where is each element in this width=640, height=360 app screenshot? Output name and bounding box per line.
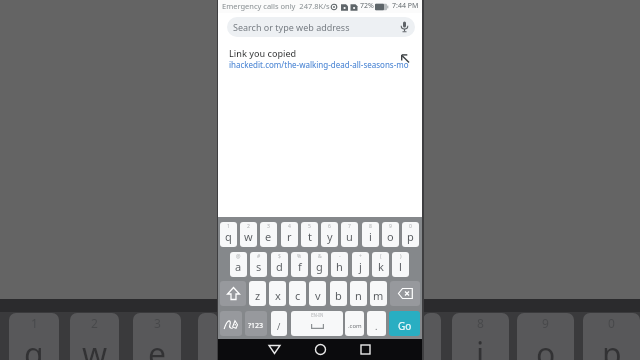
staticText: 6: [328, 223, 331, 230]
staticText: Go: [398, 319, 412, 333]
staticText: i: [476, 332, 485, 360]
staticText: f: [298, 259, 302, 274]
staticText: d: [276, 259, 283, 274]
staticText: /: [277, 320, 281, 332]
staticText: u: [346, 229, 353, 244]
staticText: 8: [369, 223, 372, 230]
staticText: ): [400, 253, 402, 260]
staticText: t: [308, 229, 312, 244]
button[interactable]: z: [249, 281, 266, 306]
staticText: 2: [91, 315, 98, 331]
button[interactable]: #: [250, 252, 267, 277]
staticText: .com: [348, 322, 362, 330]
staticText: l: [399, 259, 402, 274]
staticText: w: [82, 332, 108, 360]
staticText: o: [387, 229, 394, 244]
staticText: EN-IN: [311, 312, 324, 318]
button[interactable]: 1: [220, 222, 237, 247]
staticText: $: [278, 253, 281, 260]
button[interactable]: x: [269, 281, 286, 306]
button[interactable]: EN-IN: [291, 311, 343, 336]
staticText: e: [148, 332, 167, 360]
staticText: ?123: [248, 321, 264, 331]
button[interactable]: 9: [382, 222, 399, 247]
button[interactable]: m: [370, 281, 387, 306]
button[interactable]: [359, 343, 372, 356]
button[interactable]: $: [271, 252, 288, 277]
staticText: 9: [389, 223, 392, 230]
button[interactable]: 6: [321, 222, 338, 247]
button[interactable]: c: [289, 281, 306, 306]
staticText: n: [355, 288, 362, 303]
staticText: ihackedit.com/the-walking-dead-all-seaso…: [229, 59, 409, 70]
staticText: 7:44 PM: [392, 1, 419, 11]
button[interactable]: v: [309, 281, 326, 306]
staticText: c: [295, 288, 301, 303]
staticText: m: [373, 288, 384, 303]
staticText: 0: [608, 315, 615, 331]
staticText: 1: [31, 315, 38, 331]
button[interactable]: [314, 343, 327, 356]
button[interactable]: ?123: [245, 311, 267, 336]
button[interactable]: +: [352, 252, 369, 277]
button[interactable]: &: [311, 252, 328, 277]
staticText: #: [257, 253, 261, 260]
staticText: Search or type web address: [233, 21, 350, 33]
staticText: 7: [348, 223, 351, 230]
button[interactable]: b: [330, 281, 347, 306]
staticText: g: [316, 259, 323, 274]
button[interactable]: @: [230, 252, 247, 277]
button[interactable]: (: [372, 252, 389, 277]
staticText: p: [602, 332, 622, 360]
staticText: a: [235, 259, 242, 274]
button[interactable]: ): [392, 252, 409, 277]
staticText: 3: [267, 223, 270, 230]
staticText: e: [265, 229, 272, 244]
staticText: b: [335, 288, 342, 303]
button[interactable]: n: [350, 281, 367, 306]
staticText: 4: [288, 223, 291, 230]
staticText: o: [536, 332, 556, 360]
staticText: q: [225, 229, 232, 244]
button[interactable]: 4: [281, 222, 298, 247]
button[interactable]: 7: [341, 222, 358, 247]
staticText: 0: [409, 223, 412, 230]
button[interactable]: Go: [389, 311, 420, 336]
button[interactable]: [268, 343, 281, 356]
staticText: 8: [477, 315, 484, 331]
button[interactable]: 3: [260, 222, 277, 247]
button[interactable]: 8: [362, 222, 379, 247]
button[interactable]: 0: [402, 222, 419, 247]
staticText: +: [359, 253, 362, 260]
staticText: %: [297, 253, 302, 260]
staticText: @: [236, 253, 241, 260]
staticText: k: [378, 259, 384, 274]
staticText: (: [380, 253, 382, 260]
staticText: z: [255, 288, 261, 303]
button[interactable]: Search or type web address: [227, 17, 415, 37]
staticText: v: [315, 288, 321, 303]
button[interactable]: /: [271, 311, 287, 336]
staticText: 3: [154, 315, 161, 331]
staticText: 2: [247, 223, 250, 230]
staticText: -: [339, 253, 341, 260]
staticText: w: [244, 229, 253, 244]
button[interactable]: Link you copied: [218, 44, 422, 74]
button[interactable]: .: [367, 311, 386, 336]
staticText: j: [359, 259, 362, 274]
button[interactable]: -: [331, 252, 348, 277]
staticText: 9: [542, 315, 549, 331]
button[interactable]: [390, 281, 420, 306]
button[interactable]: [220, 311, 242, 336]
button[interactable]: %: [291, 252, 308, 277]
button[interactable]: [220, 281, 246, 306]
button[interactable]: 2: [240, 222, 257, 247]
button[interactable]: .com: [345, 311, 364, 336]
staticText: 5: [308, 223, 311, 230]
staticText: q: [24, 332, 44, 360]
staticText: &: [318, 253, 322, 260]
staticText: Link you copied: [229, 47, 297, 59]
staticText: p: [407, 229, 414, 244]
button[interactable]: 5: [301, 222, 318, 247]
staticText: Emergency calls only 247.8K/s: [222, 1, 330, 11]
